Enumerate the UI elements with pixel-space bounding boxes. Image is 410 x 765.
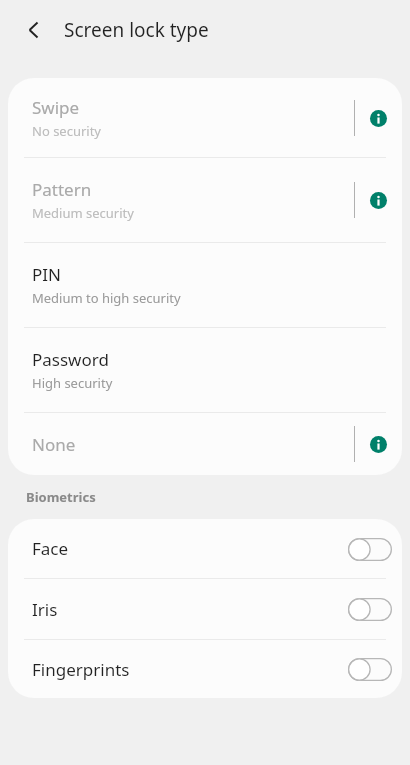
button[interactable]: Iris: [8, 579, 402, 639]
button[interactable]: Face toggle, off: [340, 525, 400, 573]
staticText: Swipe: [32, 96, 80, 119]
button[interactable]: Password: [8, 328, 402, 412]
staticText: Iris: [32, 598, 340, 621]
staticText: Password: [32, 348, 109, 371]
button[interactable]: Information: [356, 96, 400, 140]
button[interactable]: PIN: [8, 243, 402, 327]
button[interactable]: Fingerprints toggle, off: [340, 645, 400, 693]
button[interactable]: Swipe: [8, 78, 402, 157]
button[interactable]: Information: [356, 422, 400, 466]
button[interactable]: Back: [10, 6, 58, 54]
button[interactable]: Information: [356, 178, 400, 222]
button[interactable]: None: [8, 413, 402, 475]
button[interactable]: Pattern: [8, 158, 402, 242]
staticText: High security: [32, 374, 113, 392]
staticText: Biometrics: [26, 488, 96, 506]
staticText: Medium security: [32, 204, 134, 222]
staticText: Pattern: [32, 178, 92, 201]
staticText: Medium to high security: [32, 289, 181, 307]
button[interactable]: Face: [8, 519, 402, 578]
staticText: Face: [32, 537, 340, 560]
staticText: None: [32, 433, 76, 456]
button[interactable]: Fingerprints: [8, 640, 402, 698]
staticText: Fingerprints: [32, 658, 340, 681]
button[interactable]: Iris toggle, off: [340, 585, 400, 633]
staticText: Screen lock type: [64, 17, 209, 43]
staticText: PIN: [32, 263, 61, 286]
staticText: No security: [32, 122, 102, 140]
